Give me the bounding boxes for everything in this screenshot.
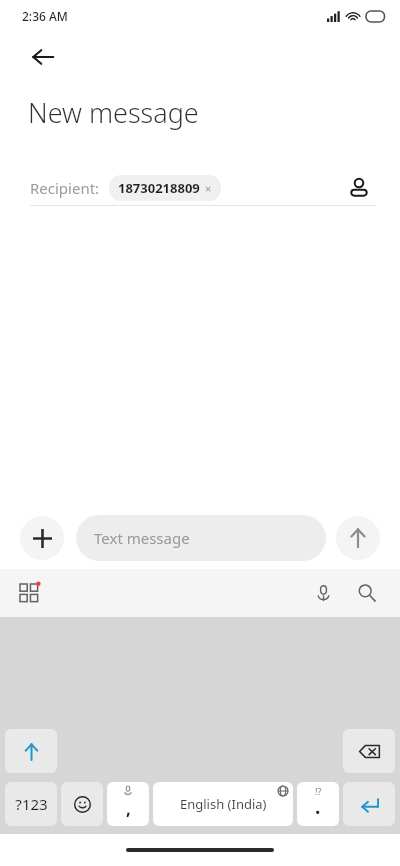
button[interactable]: Backspace — [343, 729, 395, 773]
button[interactable]: Enter — [343, 782, 395, 826]
staticText: × — [205, 181, 212, 196]
staticText: . — [315, 794, 321, 820]
staticText: !? — [315, 785, 322, 797]
button[interactable]: ?123 — [5, 782, 57, 826]
staticText: ?123 — [15, 794, 48, 814]
button[interactable]: Choose contact — [342, 171, 376, 205]
button[interactable]: Send — [336, 516, 380, 560]
staticText: 18730218809 — [118, 179, 200, 197]
button[interactable]: Search — [350, 576, 384, 610]
button[interactable]: English (India) — [153, 782, 293, 826]
staticText: New message — [28, 94, 199, 131]
button[interactable]: Back — [22, 36, 64, 78]
staticText: English (India) — [180, 795, 267, 813]
staticText: , — [126, 797, 131, 820]
staticText: Recipient: — [30, 178, 100, 198]
button[interactable]: Toolbar — [12, 576, 46, 610]
button[interactable]: Add attachment — [20, 516, 64, 560]
button[interactable]: 18730218809 — [109, 175, 221, 201]
button[interactable]: Comma and voice — [107, 782, 149, 826]
button[interactable]: Period — [297, 782, 339, 826]
button[interactable]: Emoji — [61, 782, 103, 826]
staticText: 2:36 AM — [22, 8, 68, 24]
button[interactable]: Text message — [76, 515, 326, 561]
button[interactable]: Voice input — [306, 576, 340, 610]
staticText: Text message — [94, 528, 190, 548]
button[interactable]: Shift — [5, 729, 57, 773]
